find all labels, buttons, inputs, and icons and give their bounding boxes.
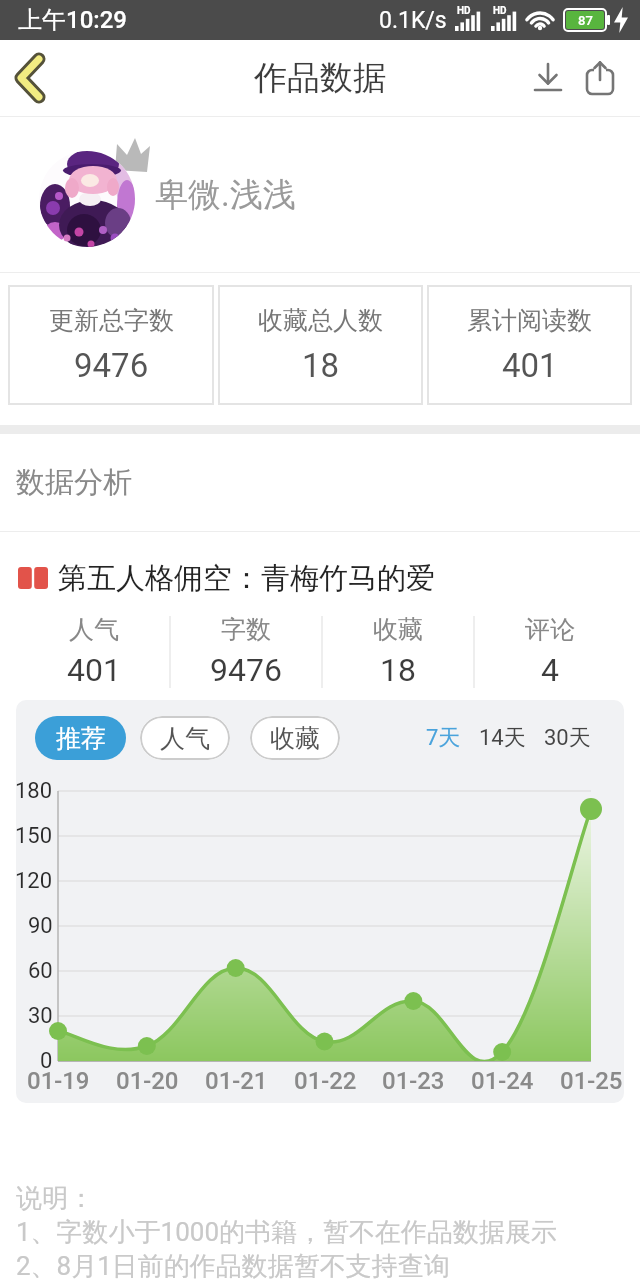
staticText: 01-25 — [560, 1067, 623, 1095]
staticText: 60 — [28, 958, 53, 984]
button[interactable]: 30天 — [544, 724, 591, 752]
staticText: 18 — [302, 346, 340, 385]
staticText: 180 — [16, 778, 53, 804]
staticText: 4 — [541, 651, 559, 689]
staticText: 120 — [16, 868, 53, 894]
staticText: 01-24 — [471, 1067, 534, 1095]
staticText: 更新总字数 — [49, 305, 174, 336]
staticText: 150 — [16, 823, 53, 849]
staticText: 0 — [40, 1048, 53, 1074]
staticText: 30 — [28, 1003, 53, 1029]
button[interactable]: 7天 — [426, 724, 461, 752]
button[interactable]: 字数 — [170, 614, 322, 700]
staticText: 人气 — [160, 723, 210, 754]
staticText: 推荐 — [56, 723, 106, 754]
staticText: 卑微.浅浅 — [155, 174, 296, 216]
staticText: 数据分析 — [16, 464, 132, 501]
staticText: 01-20 — [116, 1067, 179, 1095]
staticText: 1、字数小于1000的书籍，暂不在作品数据展示 — [16, 1216, 558, 1249]
staticText: 18 — [380, 651, 416, 689]
button[interactable]: 收藏总人数 — [218, 285, 423, 405]
button[interactable]: 评论 — [474, 614, 626, 700]
staticText: 收藏 — [373, 614, 423, 645]
staticText: 9476 — [74, 346, 149, 385]
staticText: 收藏总人数 — [258, 305, 383, 336]
staticText: 第五人格佣空：青梅竹马的爱 — [58, 560, 435, 597]
button[interactable]: 更新总字数 — [8, 285, 214, 405]
staticText: 01-22 — [294, 1067, 357, 1095]
button[interactable]: 14天 — [479, 724, 526, 752]
staticText: 上午10:29 — [18, 5, 127, 35]
staticText: HD — [457, 5, 471, 17]
button[interactable] — [574, 40, 626, 116]
button[interactable]: 收藏 — [322, 614, 474, 700]
staticText: 9476 — [210, 651, 282, 689]
staticText: 01-23 — [382, 1067, 445, 1095]
staticText: 2、8月1日前的作品数据暂不支持查询 — [16, 1250, 450, 1280]
staticText: 累计阅读数 — [467, 305, 592, 336]
staticText: 401 — [502, 346, 558, 385]
staticText: 作品数据 — [254, 57, 386, 99]
staticText: 401 — [67, 651, 121, 689]
staticText: 评论 — [525, 614, 575, 645]
button[interactable]: 人气 — [140, 716, 230, 760]
button[interactable] — [522, 40, 574, 116]
staticText: 87 — [578, 13, 593, 28]
button[interactable]: 人气 — [18, 614, 170, 700]
staticText: 收藏 — [270, 723, 320, 754]
staticText: 人气 — [69, 614, 119, 645]
staticText: 90 — [28, 913, 53, 939]
button[interactable]: 收藏 — [250, 716, 340, 760]
staticText: 01-19 — [27, 1067, 90, 1095]
button[interactable]: 累计阅读数 — [427, 285, 632, 405]
staticText: 说明： — [16, 1182, 94, 1215]
staticText: 01-21 — [205, 1067, 268, 1095]
button[interactable] — [0, 40, 60, 116]
staticText: HD — [493, 5, 507, 17]
staticText: 0.1K/s — [379, 7, 447, 34]
staticText: 字数 — [221, 614, 271, 645]
button[interactable]: 推荐 — [35, 716, 126, 760]
button[interactable]: 卑微.浅浅 — [0, 117, 640, 272]
